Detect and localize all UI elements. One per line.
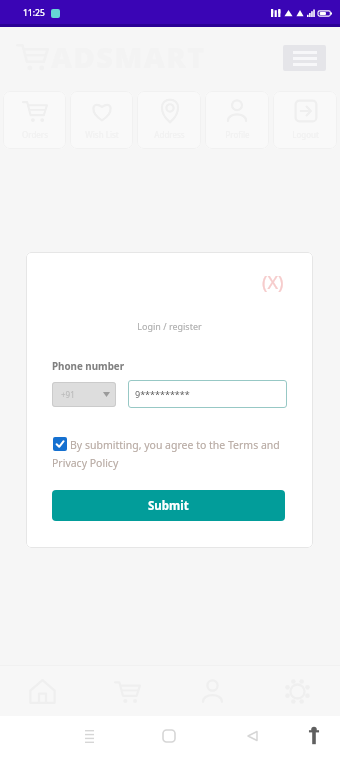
staticText: By submitting, you agree to the Terms an…: [70, 438, 280, 452]
staticText: 9**********: [135, 388, 190, 400]
button[interactable]: Menu: [283, 45, 326, 71]
button[interactable]: Agree to terms: [53, 437, 67, 451]
staticText: Submit: [148, 498, 189, 514]
button[interactable]: Keyboard: [306, 723, 322, 747]
button[interactable]: Country code: [52, 382, 116, 407]
staticText: Login / register: [26, 320, 313, 332]
button[interactable]: Phone number field: [128, 380, 287, 408]
button[interactable]: Back: [244, 728, 260, 744]
button[interactable]: (X): [262, 270, 284, 295]
staticText: 11:25: [23, 7, 45, 19]
staticText: Phone number: [52, 360, 125, 373]
button[interactable]: Recents: [81, 728, 97, 744]
staticText: +91: [61, 389, 75, 400]
button[interactable]: Home: [161, 728, 177, 744]
button[interactable]: Submit: [52, 490, 285, 521]
staticText: Privacy Policy: [52, 456, 119, 470]
